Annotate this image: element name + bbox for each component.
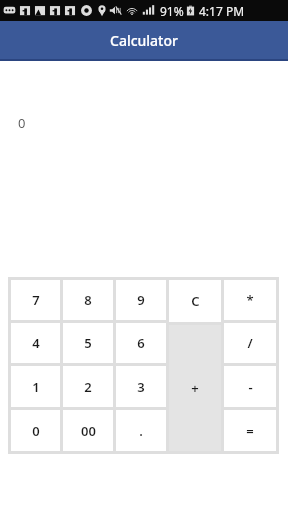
staticText: * [246, 291, 254, 309]
staticText: 5 [84, 334, 92, 352]
button[interactable]: 1 [11, 366, 60, 407]
staticText: + [191, 379, 199, 397]
staticText: / [247, 334, 253, 352]
staticText: 3 [137, 378, 145, 396]
button[interactable]: 7 [11, 280, 60, 320]
staticText: 00 [81, 422, 96, 440]
button[interactable]: 8 [63, 280, 113, 320]
staticText: 8 [84, 291, 92, 309]
staticText: 4:17 PM [199, 3, 245, 19]
staticText: 0 [18, 114, 26, 132]
button[interactable]: 00 [63, 410, 113, 451]
staticText: 6 [137, 334, 145, 352]
staticText: 9 [137, 291, 145, 309]
staticText: C [191, 292, 200, 310]
staticText: Calculator [110, 31, 178, 50]
button[interactable]: 2 [63, 366, 113, 407]
button[interactable]: 9 [116, 280, 166, 320]
button[interactable]: 3 [116, 366, 166, 407]
staticText: 4 [32, 334, 40, 352]
staticText: 7 [32, 291, 40, 309]
button[interactable]: / [224, 323, 276, 363]
staticText: 91% [160, 3, 184, 19]
button[interactable]: C [169, 280, 221, 322]
staticText: 2 [84, 378, 92, 396]
button[interactable]: = [224, 410, 276, 451]
staticText: = [246, 422, 254, 440]
button[interactable]: . [116, 410, 166, 451]
button[interactable]: 5 [63, 323, 113, 363]
staticText: - [248, 378, 253, 396]
button[interactable]: - [224, 366, 276, 407]
button[interactable]: * [224, 280, 276, 320]
button[interactable]: 0 [11, 410, 60, 451]
staticText: . [139, 422, 143, 440]
button[interactable]: 4 [11, 323, 60, 363]
staticText: 0 [32, 422, 40, 440]
staticText: 1 [32, 378, 40, 396]
button[interactable]: + [169, 325, 221, 451]
button[interactable]: 6 [116, 323, 166, 363]
